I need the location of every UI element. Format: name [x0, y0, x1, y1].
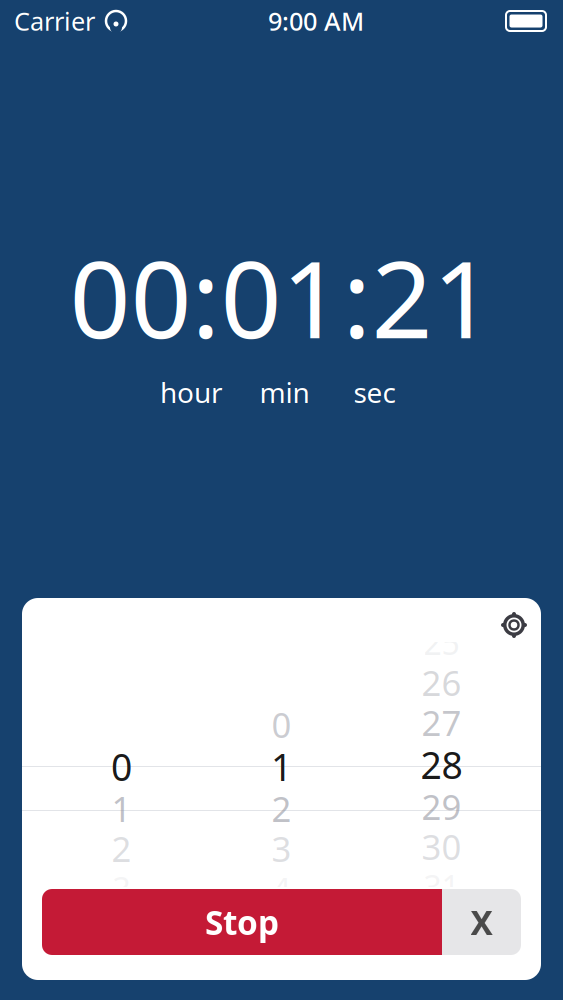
- staticText: hour: [160, 374, 223, 411]
- staticText: 27: [421, 699, 461, 745]
- staticText: 00:01:21: [69, 226, 493, 368]
- staticText: Stop: [205, 900, 279, 944]
- button[interactable]: Close: [442, 889, 521, 955]
- staticText: Carrier: [14, 4, 95, 38]
- staticText: 2: [111, 825, 131, 871]
- staticText: 4: [272, 867, 290, 910]
- staticText: 29: [421, 783, 461, 829]
- staticText: 1: [111, 785, 131, 831]
- staticText: 0: [271, 701, 291, 747]
- staticText: 30: [421, 823, 461, 869]
- staticText: 9:00 AM: [268, 4, 364, 38]
- button[interactable]: Stop: [42, 889, 442, 955]
- staticText: 28: [420, 740, 462, 789]
- staticText: 3: [112, 867, 130, 910]
- staticText: 0: [111, 742, 132, 791]
- staticText: 25: [423, 621, 459, 664]
- staticText: 2: [271, 785, 291, 831]
- staticText: 3: [271, 825, 291, 871]
- staticText: 31: [423, 865, 459, 908]
- staticText: min: [259, 374, 309, 411]
- staticText: 1: [271, 742, 292, 791]
- staticText: 26: [421, 659, 461, 705]
- staticText: X: [470, 900, 492, 944]
- staticText: sec: [353, 374, 395, 411]
- button[interactable]: Settings: [499, 600, 541, 640]
